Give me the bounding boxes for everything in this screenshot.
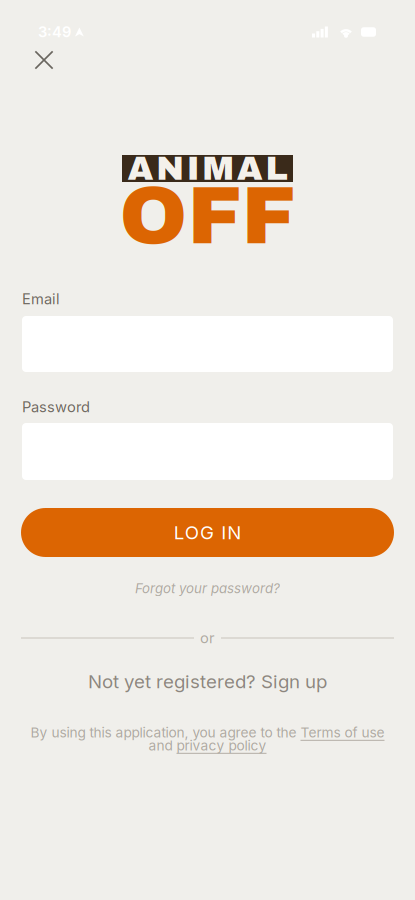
button[interactable]: Forgot your password?	[135, 582, 280, 595]
staticText: 3:49	[38, 23, 71, 41]
button[interactable]: Not yet registered? Sign up	[88, 673, 327, 690]
staticText: Password	[22, 398, 90, 416]
staticText: Not yet registered? Sign up	[88, 670, 327, 693]
button[interactable]: Close	[25, 41, 63, 79]
staticText: Forgot your password?	[135, 580, 280, 596]
staticText: LOG IN	[174, 521, 241, 544]
staticText: ANIMAL	[127, 150, 287, 187]
staticText: By using this application, you agree to …	[30, 724, 384, 741]
button[interactable]: LOG IN	[21, 508, 394, 557]
staticText: OFF	[119, 172, 295, 260]
staticText: Email	[22, 290, 60, 308]
staticText: and privacy policy	[148, 737, 266, 754]
staticText: or	[200, 629, 215, 647]
